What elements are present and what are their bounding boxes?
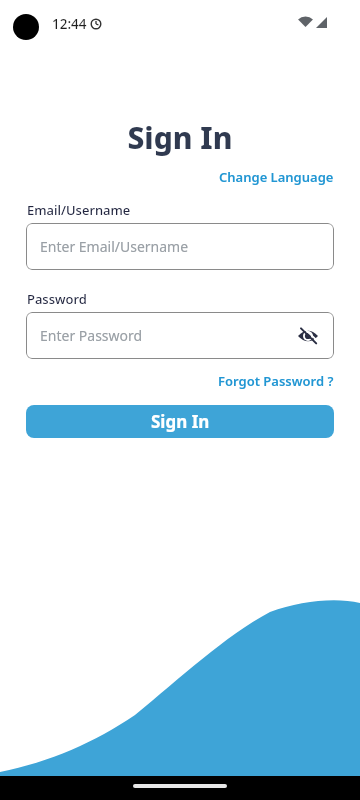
staticText: Enter Password: [40, 326, 143, 345]
button[interactable]: Forgot Password ?: [218, 372, 334, 390]
staticText: Password: [27, 290, 87, 308]
button[interactable]: Enter Password: [26, 312, 334, 359]
staticText: Enter Email/Username: [40, 237, 189, 256]
staticText: Change Language: [219, 168, 334, 186]
button[interactable]: Enter Email/Username: [26, 223, 334, 270]
staticText: Sign In: [0, 117, 360, 158]
button[interactable]: Sign In: [26, 405, 334, 438]
button[interactable]: Change Language: [219, 168, 334, 186]
button[interactable]: [296, 324, 320, 348]
staticText: Forgot Password ?: [218, 372, 334, 390]
staticText: Email/Username: [27, 201, 131, 219]
staticText: 12:44: [52, 15, 87, 33]
staticText: Sign In: [151, 410, 210, 433]
